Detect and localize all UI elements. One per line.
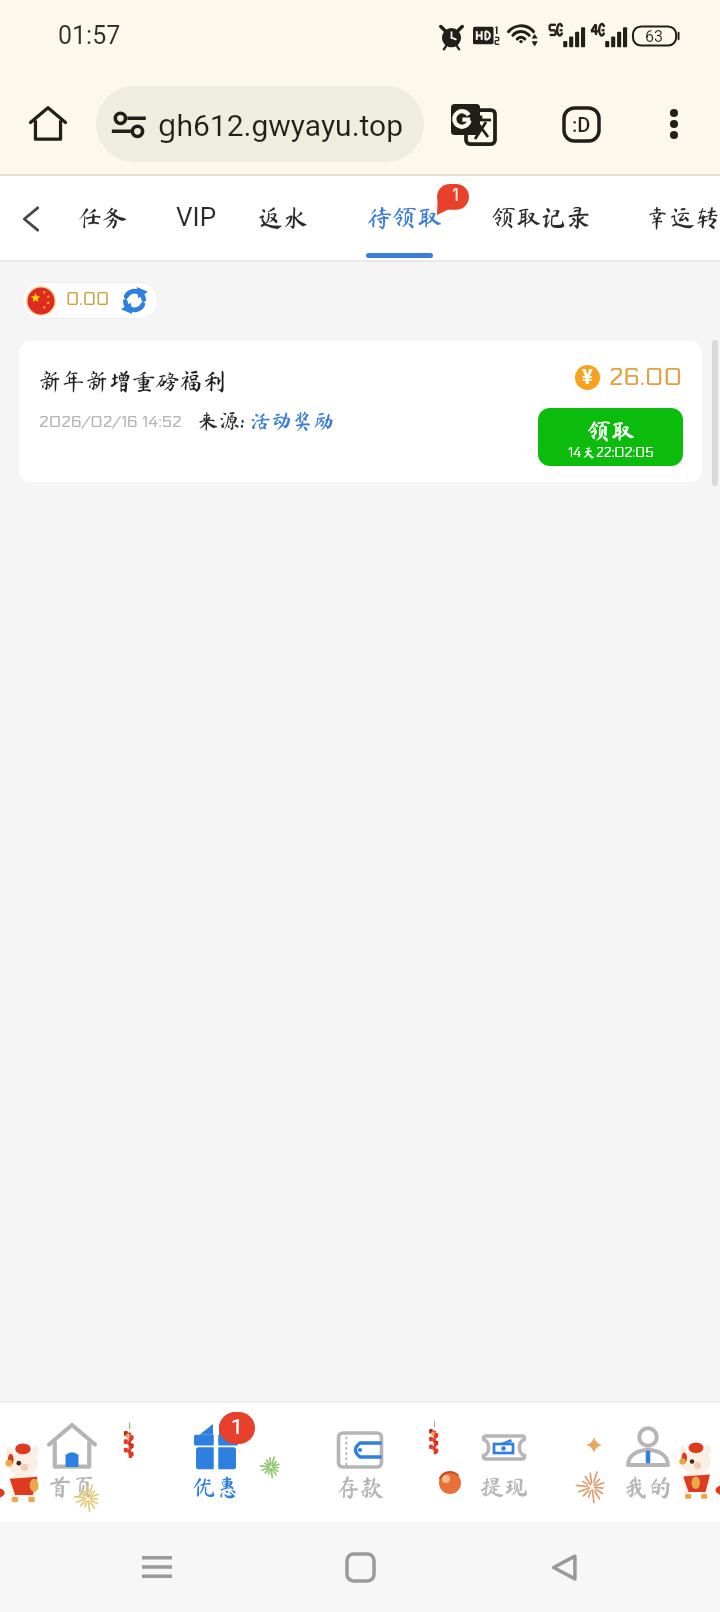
staticText: 63 <box>645 27 663 46</box>
staticText: 待领取 <box>367 205 443 230</box>
button[interactable]: 1 <box>144 1400 288 1521</box>
button[interactable]: 领取 <box>538 408 683 466</box>
button[interactable]: VIP <box>176 176 217 262</box>
staticText: 活动奖励 <box>250 411 334 432</box>
button[interactable]: 任务 <box>77 176 128 262</box>
staticText: 26.00 <box>609 363 683 391</box>
button[interactable]: 0.00 <box>26 282 149 319</box>
staticText: ɡh612.gwyayu.top <box>158 104 404 145</box>
staticText: 1 <box>452 186 459 206</box>
staticText: 首页 <box>48 1475 96 1499</box>
button[interactable]: Back <box>0 176 62 262</box>
button[interactable]: 我的 <box>576 1400 720 1521</box>
staticText: 01:57 <box>58 21 121 50</box>
button[interactable]: 提现 <box>432 1400 576 1521</box>
staticText: 提现 <box>480 1475 528 1499</box>
staticText: 任务 <box>77 205 128 230</box>
staticText: 来源: <box>198 411 245 432</box>
button[interactable]: 待领取 <box>367 176 443 262</box>
staticText: 领取 <box>587 419 635 443</box>
staticText: 领取记录 <box>491 205 592 230</box>
staticText: 0.00 <box>66 290 110 310</box>
staticText: 天 <box>582 446 596 459</box>
staticText: VIP <box>176 202 217 232</box>
staticText: ¥ <box>582 365 593 388</box>
staticText: 优惠 <box>192 1475 240 1499</box>
button[interactable]: 新年新增重磅福利 <box>19 341 702 482</box>
button[interactable]: More options <box>621 72 720 176</box>
staticText: 1 <box>231 1415 243 1440</box>
button[interactable]: 幸运转盘 <box>645 176 720 262</box>
button[interactable]: Home <box>0 72 96 176</box>
button[interactable]: ɡh612.gwyayu.top <box>96 86 424 162</box>
button[interactable]: Translate <box>424 72 521 176</box>
staticText: 返水 <box>258 205 309 230</box>
button[interactable]: Back <box>517 1522 611 1612</box>
button[interactable]: 首页 <box>0 1400 144 1521</box>
staticText: 新年新增重磅福利 <box>38 369 226 393</box>
button[interactable]: 领取记录 <box>491 176 592 262</box>
staticText: 22:02:05 <box>596 445 654 460</box>
button[interactable]: Recents <box>110 1522 204 1612</box>
staticText: 幸运转盘 <box>645 205 720 230</box>
button[interactable]: 返水 <box>258 176 309 262</box>
staticText: 14 <box>568 445 582 460</box>
staticText: 我的 <box>624 1475 672 1499</box>
button[interactable]: 存款 <box>288 1400 432 1521</box>
button[interactable]: Tabs <box>521 72 621 176</box>
staticText: 存款 <box>336 1475 384 1499</box>
button[interactable]: Home <box>313 1522 407 1612</box>
staticText: :D <box>572 113 591 136</box>
staticText: 2026/02/16 14:52 <box>39 412 182 431</box>
